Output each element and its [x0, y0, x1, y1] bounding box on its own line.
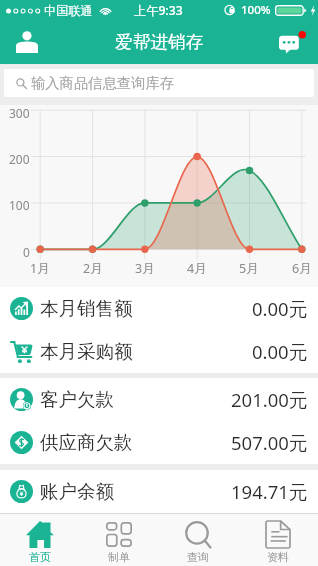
staticText: 6月 [292, 260, 312, 277]
staticText: 2月 [83, 260, 103, 277]
button[interactable]: 供应商欠款 [0, 421, 318, 464]
staticText: 中国联通 [44, 3, 93, 18]
staticText: 0.00元 [252, 339, 308, 364]
staticText: 资料 [267, 550, 289, 564]
staticText: 3月 [135, 260, 155, 277]
staticText: 账户余额 [40, 480, 114, 503]
staticText: 201.00元 [231, 387, 308, 412]
button[interactable]: 制单 [79, 514, 158, 566]
staticText: 输入商品信息查询库存 [31, 74, 174, 92]
staticText: 200 [9, 151, 30, 167]
staticText: 本月采购额 [40, 340, 133, 363]
staticText: 客户欠款 [40, 388, 114, 411]
button[interactable]: 首页 [0, 514, 79, 566]
staticText: 0.00元 [252, 296, 308, 321]
staticText: 507.00元 [231, 430, 308, 455]
button[interactable]: 查询 [158, 514, 238, 566]
button[interactable]: 输入商品信息查询库存 [4, 69, 314, 97]
staticText: 查询 [187, 550, 209, 564]
button[interactable]: 客户欠款 [0, 378, 318, 421]
button[interactable]: Account [7, 22, 47, 62]
button[interactable]: 本月采购额 [0, 330, 318, 373]
staticText: 300 [9, 105, 30, 121]
staticText: 首页 [29, 550, 51, 564]
staticText: 4月 [187, 260, 207, 277]
staticText: 1月 [30, 260, 50, 277]
button[interactable]: Messages [272, 22, 312, 62]
button[interactable]: 资料 [238, 514, 318, 566]
staticText: 供应商欠款 [40, 431, 133, 454]
button[interactable]: 本月销售额 [0, 287, 318, 330]
staticText: 上午9:33 [134, 2, 183, 19]
staticText: 100% [241, 2, 271, 18]
staticText: 194.71元 [231, 479, 308, 504]
staticText: 制单 [108, 550, 130, 564]
staticText: 本月销售额 [40, 297, 133, 320]
staticText: 5月 [239, 260, 259, 277]
button[interactable]: 账户余额 [0, 470, 318, 513]
staticText: 爱帮进销存 [115, 31, 204, 53]
staticText: 0 [23, 244, 30, 260]
staticText: 100 [9, 197, 30, 213]
